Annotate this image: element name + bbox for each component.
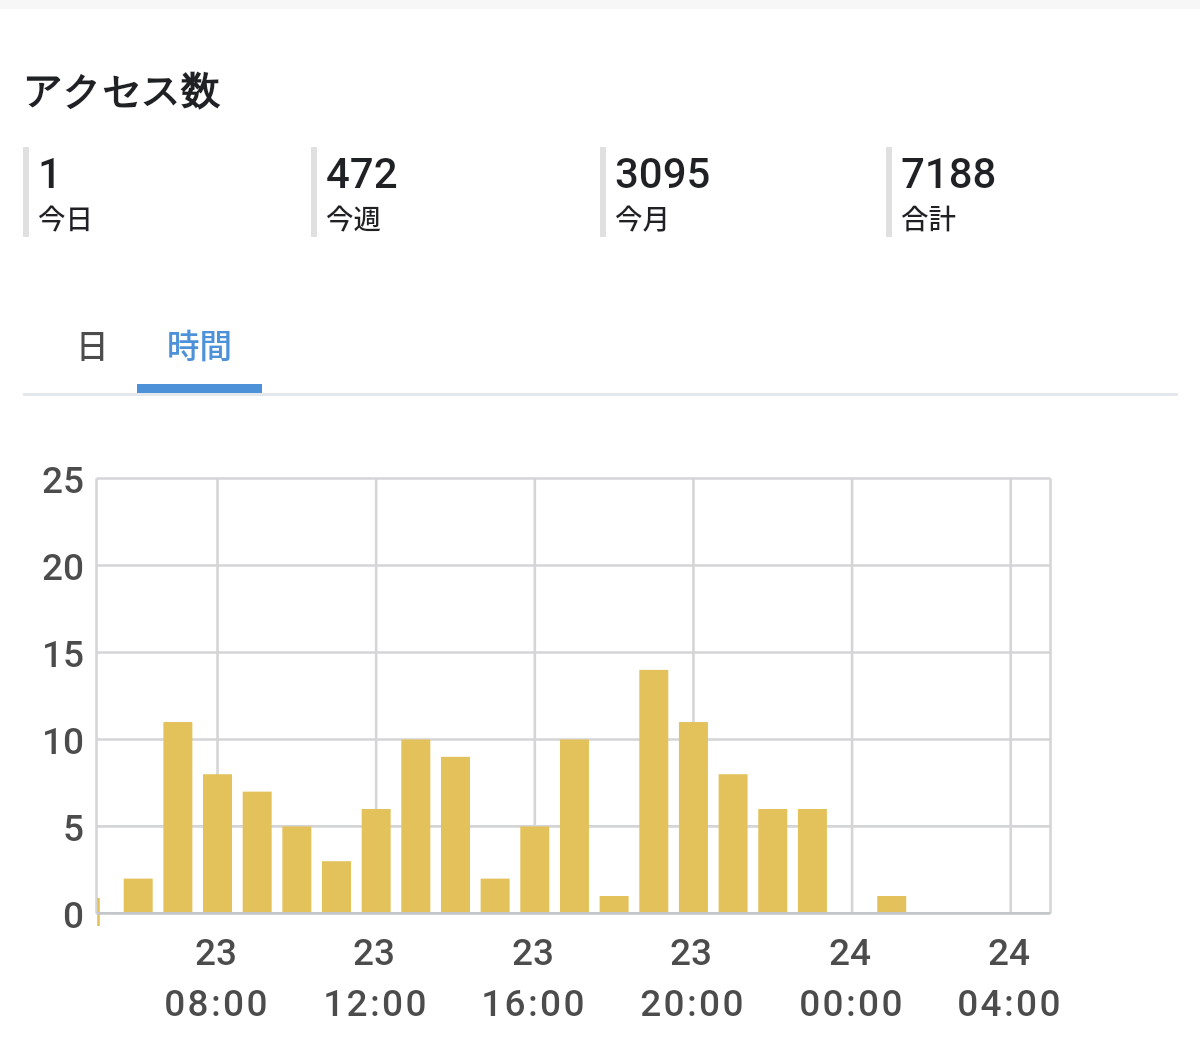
staticText: 08:00 [127,982,307,1025]
staticText: 日 [76,320,109,367]
button[interactable]: 時間 [146,301,254,385]
staticText: 10 [42,720,85,763]
staticText: 0 [63,894,85,937]
button[interactable]: 1 [23,147,303,237]
button[interactable]: 7188 [886,147,1166,237]
staticText: 24 [919,931,1099,974]
staticText: 15 [42,633,85,676]
staticText: 24 [760,931,940,974]
staticText: 12:00 [286,982,466,1025]
button[interactable]: 3095 [600,147,880,237]
staticText: 23 [443,931,623,974]
staticText: 今日 [38,197,93,237]
staticText: 合計 [901,197,956,237]
other: Hourly access bar chart [0,0,1200,1057]
staticText: アクセス数 [23,67,220,116]
staticText: 04:00 [920,982,1100,1025]
staticText: 今月 [615,197,670,237]
staticText: 00:00 [762,982,942,1025]
staticText: 16:00 [444,982,624,1025]
staticText: 3095 [615,149,711,198]
staticText: 20:00 [603,982,783,1025]
button[interactable]: 472 [311,147,591,237]
staticText: 23 [284,931,464,974]
staticText: 23 [601,931,781,974]
staticText: 7188 [901,149,997,198]
staticText: 今週 [326,197,381,237]
staticText: 472 [326,149,398,198]
staticText: 5 [63,807,85,850]
staticText: 時間 [167,320,233,367]
staticText: 20 [42,546,85,589]
staticText: 23 [126,931,306,974]
staticText: 1 [38,149,62,198]
button[interactable]: 日 [38,301,146,385]
staticText: 25 [42,459,85,502]
